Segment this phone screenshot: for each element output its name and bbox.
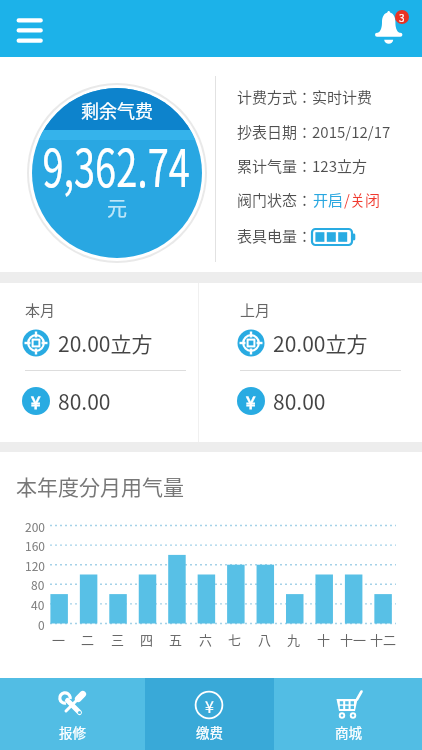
staticText: 80 bbox=[31, 576, 45, 593]
staticText: 本月 bbox=[25, 299, 56, 321]
staticText: 四 bbox=[140, 630, 154, 649]
staticText: 一 bbox=[52, 630, 66, 649]
staticText: 十一 bbox=[340, 630, 367, 649]
staticText: 20.00立方 bbox=[273, 328, 368, 358]
staticText: 80.00 bbox=[58, 386, 111, 416]
staticText: 本年度分月用气量 bbox=[16, 471, 184, 501]
staticText: ¥ bbox=[31, 389, 41, 414]
staticText: ¥ bbox=[205, 694, 214, 717]
staticText: 元 bbox=[107, 193, 127, 222]
button[interactable]: 商城 bbox=[274, 678, 422, 750]
staticText: 三 bbox=[111, 630, 125, 649]
staticText: 二 bbox=[81, 630, 95, 649]
staticText: 剩余气费 bbox=[81, 97, 153, 123]
staticText: ¥ bbox=[246, 389, 256, 414]
staticText: 十二 bbox=[370, 630, 397, 649]
staticText: 九 bbox=[287, 630, 301, 649]
staticText: 八 bbox=[258, 630, 272, 649]
staticText: 3 bbox=[399, 10, 405, 24]
staticText: 120 bbox=[25, 557, 45, 574]
staticText: 200 bbox=[25, 518, 45, 535]
button[interactable]: 3 bbox=[368, 4, 412, 50]
staticText: 40 bbox=[31, 596, 45, 613]
staticText: 上月 bbox=[240, 299, 271, 321]
staticText: 七 bbox=[228, 630, 242, 649]
staticText: 0 bbox=[38, 616, 45, 633]
button[interactable]: ¥ bbox=[145, 678, 274, 750]
staticText: 缴费 bbox=[196, 722, 223, 742]
staticText: 十 bbox=[317, 630, 331, 649]
staticText: 累计气量：123立方 bbox=[237, 155, 367, 177]
staticText: 报修 bbox=[59, 722, 86, 742]
staticText: 9,362.74 bbox=[42, 127, 191, 202]
staticText: 20.00立方 bbox=[58, 328, 153, 358]
button[interactable]: 报修 bbox=[0, 678, 145, 750]
staticText: 商城 bbox=[335, 722, 362, 742]
button[interactable] bbox=[10, 12, 54, 50]
staticText: 六 bbox=[199, 630, 213, 649]
staticText: 表具电量： bbox=[237, 225, 313, 247]
staticText: 阀门状态： bbox=[237, 189, 313, 211]
staticText: /关闭 bbox=[344, 189, 380, 211]
staticText: 抄表日期：2015/12/17 bbox=[237, 121, 391, 143]
staticText: 计费方式：实时计费 bbox=[237, 86, 373, 108]
staticText: 160 bbox=[25, 537, 45, 554]
staticText: 五 bbox=[169, 630, 183, 649]
staticText: 开启 bbox=[313, 189, 344, 211]
staticText: 80.00 bbox=[273, 386, 326, 416]
